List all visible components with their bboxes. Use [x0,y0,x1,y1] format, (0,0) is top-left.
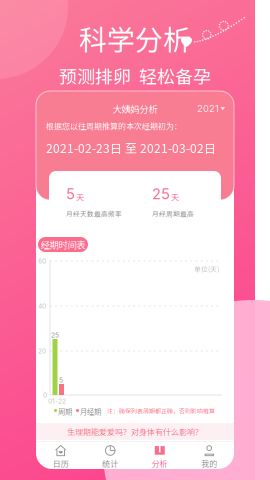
button[interactable]: 2021 [191,101,234,116]
staticText: 天 [76,191,84,203]
button[interactable]: 分析 [135,442,184,469]
staticText: 40 [38,302,46,310]
staticText: 01-22 [48,397,66,405]
staticText: 经期时间表 [40,238,85,251]
staticText: 生理期能爱爱吗？对身体有什么影响？ [67,426,203,437]
staticText: 注：确保列表周期都正确，否则影响推算 [107,406,215,415]
staticText: 分析 [152,457,168,469]
staticText: 月经期 [80,406,101,417]
staticText: 5 [66,185,75,203]
staticText: 统计 [102,457,118,469]
staticText: 天 [171,191,179,203]
staticText: 周期 [58,406,72,417]
staticText: 科学分析 [79,18,191,58]
staticText: 大姨妈分析 [112,102,157,115]
staticText: 根据您以往周期推算的本次经期初为： [46,120,182,132]
staticText: 25 [51,331,59,339]
staticText: 60 [38,257,46,265]
button[interactable]: 日历 [36,442,85,469]
staticText: 2021-02-23日 至 2021-03-02日 [46,139,216,156]
staticText: 月经天数最高频率 [66,209,122,218]
button[interactable]: 统计 [85,442,135,469]
staticText: 0 [43,391,47,399]
staticText: 25 [152,185,170,203]
staticText: 单位(天) [194,264,219,274]
staticText: 我的 [201,457,217,469]
staticText: 2021 [197,103,219,114]
staticText: 20 [38,347,46,355]
button[interactable]: 生理期能爱爱吗？对身体有什么影响？ [36,423,234,440]
staticText: 日历 [53,457,69,469]
staticText: 预测排卵 轻松备孕 [59,62,211,89]
staticText: 5 [59,376,63,384]
staticText: 月经周期最高 [152,209,194,218]
button[interactable]: 我的 [184,442,234,469]
